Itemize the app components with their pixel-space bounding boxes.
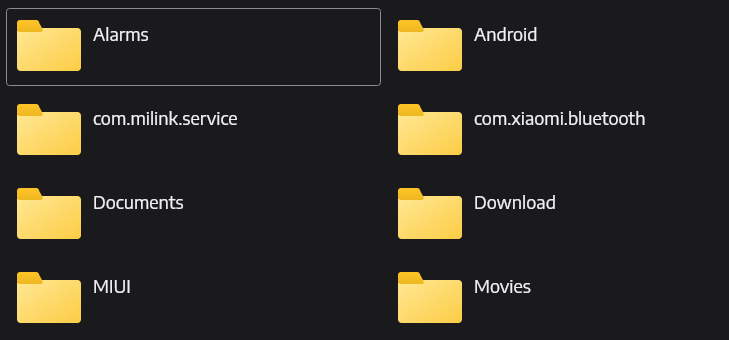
button[interactable]: Documents	[0, 168, 381, 252]
button[interactable]: Android	[381, 0, 729, 84]
staticText: Android	[474, 22, 721, 45]
button[interactable]: Download	[381, 168, 729, 252]
button[interactable]: MIUI	[0, 252, 381, 336]
button[interactable]: Movies	[381, 252, 729, 336]
staticText: Alarms	[93, 22, 373, 45]
staticText: com.milink.service	[93, 106, 373, 129]
staticText: Movies	[474, 274, 721, 297]
staticText: MIUI	[93, 274, 373, 297]
staticText: Documents	[93, 190, 373, 213]
button[interactable]: Alarms	[0, 0, 381, 84]
button[interactable]: com.xiaomi.bluetooth	[381, 84, 729, 168]
staticText: Download	[474, 190, 721, 213]
staticText: com.xiaomi.bluetooth	[474, 106, 721, 129]
button[interactable]: com.milink.service	[0, 84, 381, 168]
